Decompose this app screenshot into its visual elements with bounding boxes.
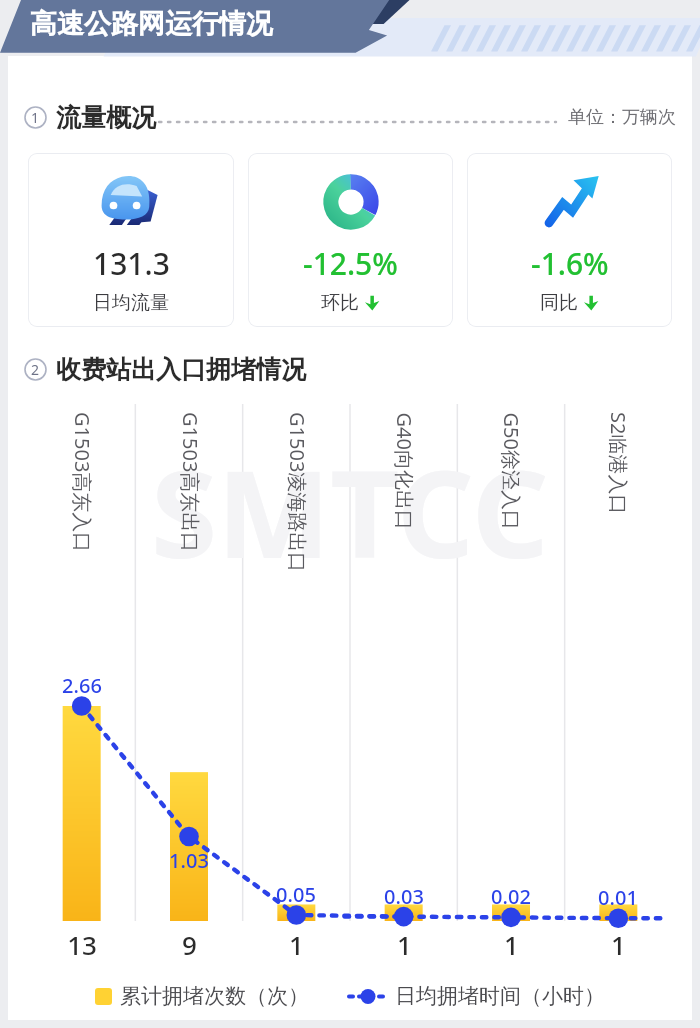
staticText: 0.05 xyxy=(276,881,316,908)
staticText: 2 xyxy=(31,360,40,379)
button[interactable]: Month over month xyxy=(248,153,453,327)
staticText: S2临港入口 xyxy=(605,412,632,515)
staticText: G40向化出口 xyxy=(390,412,417,530)
staticText: G50徐泾入口 xyxy=(497,412,524,530)
staticText: 1 xyxy=(611,927,626,962)
staticText: 1 xyxy=(504,927,519,962)
button[interactable]: Daily traffic xyxy=(28,153,234,327)
button[interactable]: 2 xyxy=(24,350,700,388)
staticText: 13 xyxy=(67,927,97,962)
staticText: -12.5% xyxy=(303,243,398,284)
staticText: 131.3 xyxy=(93,243,170,284)
staticText: 0.02 xyxy=(491,883,531,910)
staticText: 1 xyxy=(289,927,304,962)
staticText: 1 xyxy=(31,108,40,127)
staticText: 同比 xyxy=(540,291,578,315)
staticText: 环比 xyxy=(321,291,359,315)
staticText: 2.66 xyxy=(62,672,102,699)
staticText: 1.03 xyxy=(169,847,209,874)
staticText: 收费站出入口拥堵情况 xyxy=(56,354,306,385)
staticText: 日均流量 xyxy=(93,291,169,315)
staticText: -1.6% xyxy=(531,243,609,284)
staticText: 高速公路网运行情况 xyxy=(30,7,273,41)
staticText: 1 xyxy=(397,927,412,962)
staticText: 日均拥堵时间（小时） xyxy=(395,983,605,1009)
staticText: 0.01 xyxy=(598,884,638,911)
staticText: SMTCC xyxy=(151,430,549,593)
staticText: G1503凌海路出口 xyxy=(284,412,311,573)
staticText: 0.03 xyxy=(384,883,424,910)
button[interactable]: 累计拥堵次数（次） xyxy=(95,983,309,1009)
button[interactable]: 日均拥堵时间（小时） xyxy=(349,983,605,1009)
staticText: 9 xyxy=(182,927,197,962)
staticText: 累计拥堵次数（次） xyxy=(120,983,309,1009)
staticText: G1503高东出口 xyxy=(177,412,204,553)
staticText: 流量概况 xyxy=(56,102,156,133)
staticText: G1503高东入口 xyxy=(69,412,96,553)
button[interactable]: Year over year xyxy=(467,153,672,327)
button[interactable]: 1 xyxy=(24,97,676,137)
staticText: 单位：万辆次 xyxy=(568,106,676,129)
